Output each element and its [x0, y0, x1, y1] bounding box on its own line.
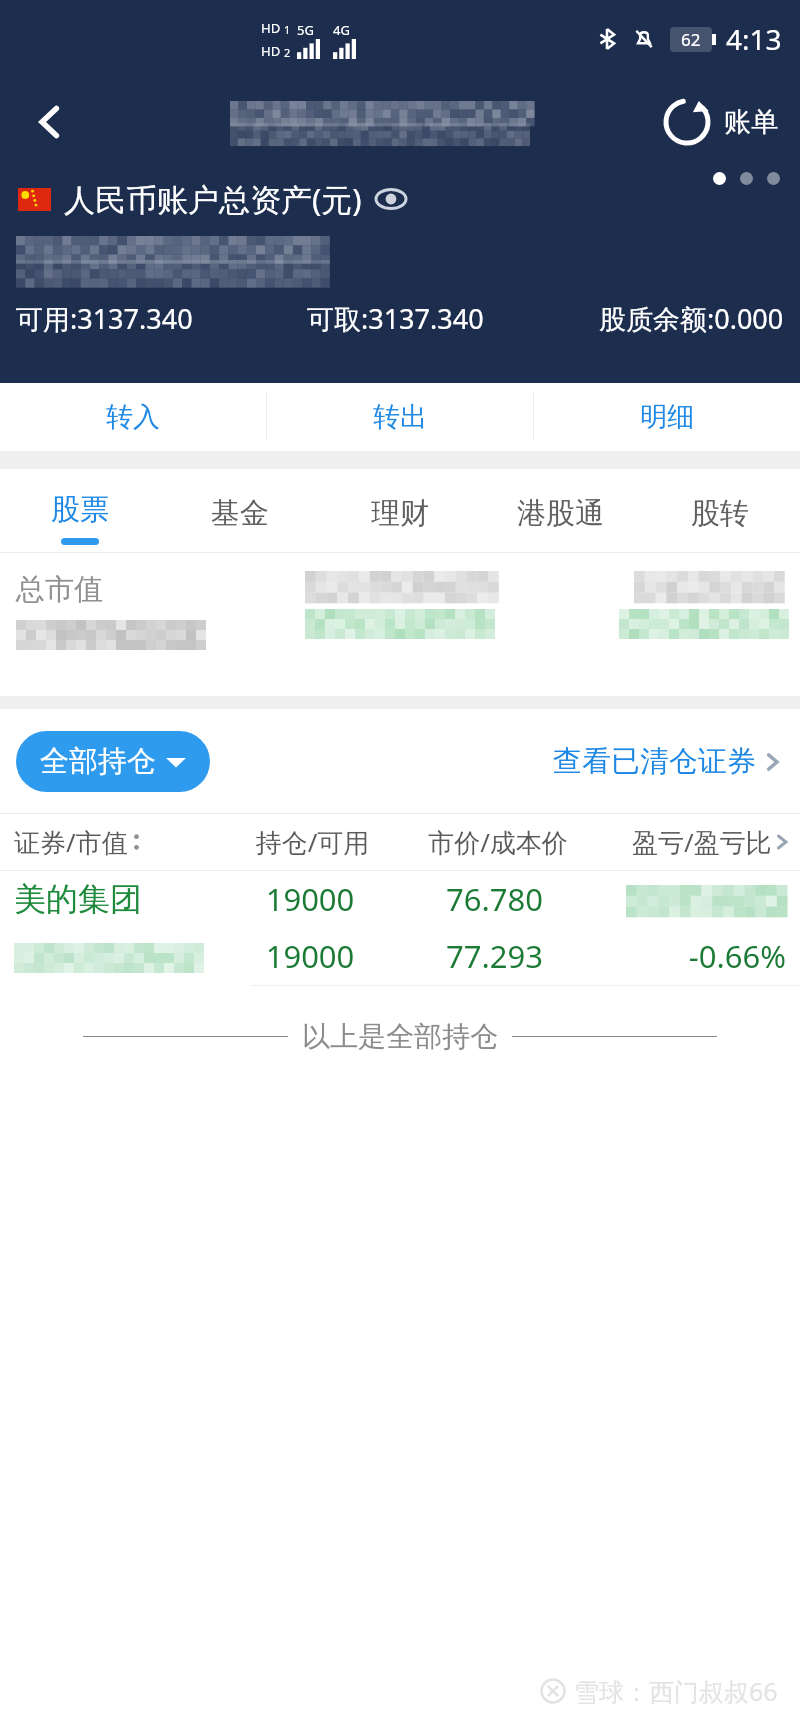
staticText: 19000 [220, 935, 400, 977]
staticText: 转入 [106, 400, 160, 434]
staticText: 5G [297, 21, 314, 39]
button[interactable]: 全部持仓 [16, 731, 210, 792]
staticText: 1 [284, 22, 291, 37]
button[interactable]: 股票 [0, 469, 160, 553]
staticText: -0.66% [589, 935, 786, 977]
staticText: 雪球：西门叔叔66 [574, 1674, 778, 1708]
staticText: 77.293 [400, 935, 589, 977]
staticText: 持仓/可用 [222, 824, 403, 860]
button[interactable]: 美的集团 [0, 871, 800, 986]
button[interactable]: 转出 [267, 383, 533, 451]
staticText: 股质余额:0.000 [599, 300, 784, 337]
staticText: 4G [333, 21, 350, 39]
staticText: 19000 [220, 878, 400, 920]
staticText: 转出 [373, 400, 427, 434]
staticText: 理财 [371, 495, 429, 532]
button[interactable]: 明细 [534, 383, 800, 451]
button[interactable]: Back [0, 78, 100, 166]
staticText: 可用:3137.340 [16, 300, 193, 337]
button[interactable]: 港股通 [480, 469, 640, 553]
staticText: 股票 [51, 491, 109, 528]
staticText: 明细 [640, 400, 694, 434]
staticText: 股转 [691, 495, 749, 532]
staticText: 账单 [724, 105, 778, 139]
button[interactable]: Toggle visibility [374, 182, 408, 216]
button[interactable]: Refresh [650, 85, 724, 159]
staticText: 62 [681, 28, 701, 51]
staticText: 市价/成本价 [403, 824, 593, 860]
staticText: 2 [284, 45, 291, 60]
staticText: HD [261, 42, 281, 60]
staticText: 4:13 [726, 20, 782, 58]
staticText: HD [261, 19, 281, 37]
staticText: 可取:3137.340 [307, 300, 484, 337]
staticText: 美的集团 [14, 879, 220, 919]
button[interactable]: 基金 [160, 469, 320, 553]
staticText: 港股通 [517, 495, 604, 532]
staticText: 以上是全部持仓 [302, 1019, 498, 1054]
staticText: 查看已清仓证券 [553, 743, 756, 780]
staticText: 全部持仓 [40, 743, 156, 780]
button[interactable]: 理财 [320, 469, 480, 553]
button[interactable]: 转入 [0, 383, 266, 451]
staticText: 基金 [211, 495, 269, 532]
staticText: 盈亏/盈亏比 [632, 824, 772, 860]
button[interactable]: 股转 [640, 469, 800, 553]
staticText: 总市值 [16, 571, 103, 608]
button[interactable]: 查看已清仓证券 [553, 743, 784, 780]
staticText: 人民币账户总资产(元) [64, 178, 362, 220]
staticText: 证券/市值 [14, 824, 128, 860]
button[interactable]: 账单 [724, 105, 778, 139]
staticText: 76.780 [400, 878, 589, 920]
